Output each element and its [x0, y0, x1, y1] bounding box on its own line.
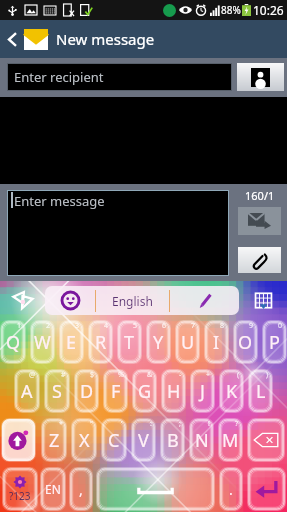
button[interactable]: I: [204, 320, 229, 364]
staticText: U: [181, 330, 195, 355]
button[interactable]: Emoji: [45, 286, 95, 315]
staticText: :: [150, 419, 152, 429]
staticText: C: [108, 428, 120, 453]
button[interactable]: .: [219, 467, 243, 511]
staticText: Enter recipient: [14, 68, 104, 86]
button[interactable]: Contacts: [237, 63, 284, 91]
button[interactable]: Attach: [238, 247, 281, 273]
staticText: 160/1: [245, 188, 275, 203]
staticText: New message: [56, 29, 155, 49]
staticText: -: [179, 370, 182, 380]
staticText: +: [206, 370, 211, 380]
button[interactable]: K: [219, 369, 244, 413]
staticText: ?: [235, 419, 239, 429]
button[interactable]: Enter message: [7, 190, 229, 276]
button[interactable]: V: [131, 418, 156, 462]
button[interactable]: S: [44, 369, 70, 413]
staticText: @: [29, 370, 36, 380]
staticText: K: [226, 379, 238, 404]
staticText: L: [256, 379, 266, 404]
button[interactable]: Keyboard settings: [0, 285, 45, 315]
button[interactable]: M: [218, 418, 243, 462]
button[interactable]: D: [74, 369, 99, 413]
staticText: $: [90, 370, 95, 380]
button[interactable]: Back: [0, 20, 24, 58]
staticText: (: [237, 370, 240, 380]
button[interactable]: A: [14, 369, 40, 413]
staticText: I: [213, 330, 220, 355]
staticText: X: [79, 428, 90, 453]
button[interactable]: B: [160, 418, 185, 462]
button[interactable]: Themes: [239, 285, 287, 315]
button[interactable]: English: [96, 286, 169, 315]
staticText: ): [266, 370, 269, 380]
button[interactable]: F: [103, 369, 128, 413]
button[interactable]: U: [175, 320, 200, 364]
staticText: 0: [278, 321, 283, 331]
button[interactable]: Enter: [247, 467, 286, 511]
staticText: F: [111, 379, 121, 404]
staticText: 3: [75, 321, 80, 331]
staticText: Y: [153, 330, 164, 355]
staticText: 1: [17, 321, 22, 331]
button[interactable]: J: [190, 369, 215, 413]
button[interactable]: E: [59, 320, 84, 364]
button[interactable]: Space: [96, 467, 215, 511]
staticText: G: [138, 379, 152, 404]
staticText: ": [90, 419, 93, 429]
staticText: 5: [133, 321, 138, 331]
staticText: ;: [179, 419, 181, 429]
staticText: 2: [46, 321, 51, 331]
staticText: E: [66, 330, 77, 355]
button[interactable]: Z: [41, 418, 67, 462]
staticText: Enter message: [14, 192, 105, 210]
staticText: P: [269, 330, 280, 355]
staticText: %: [118, 370, 124, 380]
button[interactable]: R: [88, 320, 113, 364]
staticText: *: [59, 419, 63, 429]
staticText: T: [124, 330, 135, 355]
staticText: 8: [220, 321, 225, 331]
staticText: ': [121, 419, 123, 429]
button[interactable]: C: [101, 418, 127, 462]
staticText: &: [147, 370, 153, 380]
staticText: W: [34, 330, 51, 355]
button[interactable]: X: [71, 418, 97, 462]
button[interactable]: Y: [146, 320, 171, 364]
button[interactable]: Send: [238, 207, 281, 235]
staticText: 4: [104, 321, 109, 331]
staticText: O: [238, 330, 253, 355]
staticText: ,: [79, 480, 83, 499]
button[interactable]: Enter recipient: [7, 63, 232, 91]
button[interactable]: Q: [0, 320, 26, 364]
staticText: A: [21, 379, 33, 404]
staticText: Q: [6, 330, 21, 355]
button[interactable]: Handwriting: [170, 286, 239, 315]
staticText: B: [167, 428, 179, 453]
button[interactable]: Backspace: [247, 418, 285, 462]
button[interactable]: H: [161, 369, 186, 413]
staticText: Z: [49, 428, 60, 453]
button[interactable]: EN: [40, 467, 66, 511]
staticText: H: [167, 379, 181, 404]
staticText: 10:26: [253, 2, 284, 18]
staticText: 9: [249, 321, 254, 331]
staticText: EN: [45, 481, 61, 497]
button[interactable]: N: [189, 418, 214, 462]
staticText: 7: [191, 321, 196, 331]
staticText: ?123: [9, 489, 31, 503]
button[interactable]: Symbols: [2, 467, 38, 511]
button[interactable]: G: [132, 369, 157, 413]
button[interactable]: T: [117, 320, 142, 364]
staticText: !: [208, 419, 210, 429]
staticText: M: [222, 428, 239, 453]
staticText: J: [200, 379, 205, 404]
staticText: D: [80, 379, 94, 404]
staticText: 88%: [221, 3, 241, 17]
button[interactable]: O: [233, 320, 258, 364]
button[interactable]: Shift: [1, 418, 36, 462]
button[interactable]: P: [262, 320, 287, 364]
button[interactable]: W: [30, 320, 55, 364]
button[interactable]: L: [248, 369, 273, 413]
button[interactable]: ,: [69, 467, 93, 511]
